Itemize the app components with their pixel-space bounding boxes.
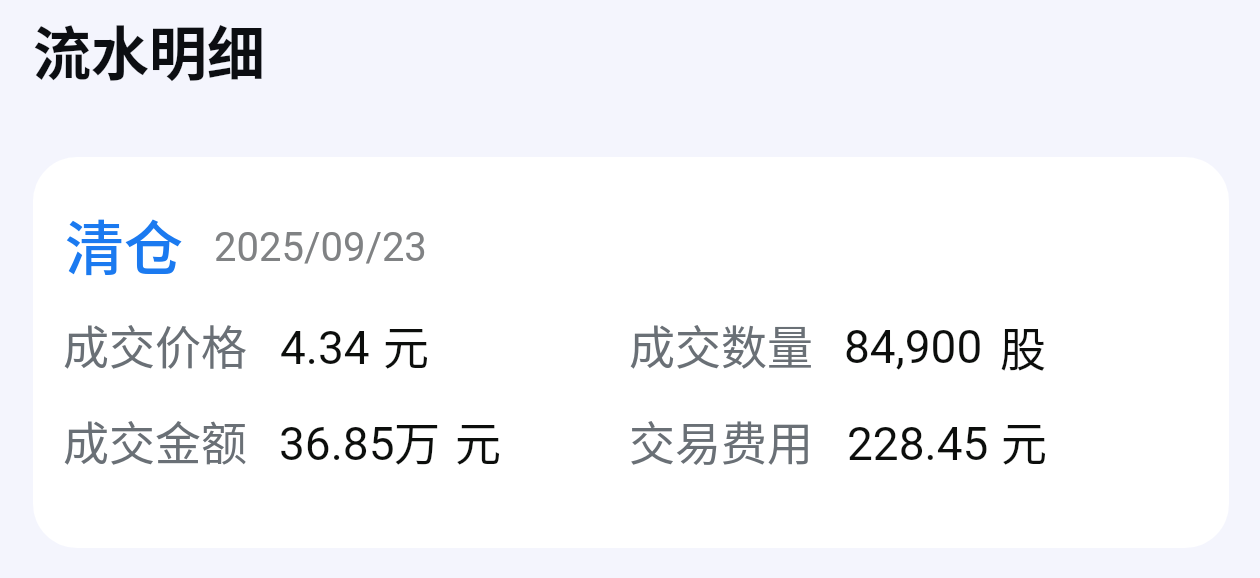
staticText: 成交数量 [629,311,813,378]
staticText: 成交金额 [63,407,247,474]
staticText: 清仓 [65,202,184,287]
button[interactable]: 清仓 [33,157,1229,548]
staticText: 228.45 [847,417,989,471]
staticText: 4.34 [280,321,370,375]
staticText: 元 [455,407,501,474]
staticText: 元 [383,311,429,378]
staticText: 流水明细 [33,8,266,92]
staticText: 84,900 [844,320,983,374]
staticText: 交易费用 [629,407,813,474]
staticText: 成交价格 [63,311,247,378]
staticText: 元 [1001,407,1047,474]
staticText: 2025/09/23 [214,224,427,271]
staticText: 36.85 [279,417,395,471]
staticText: 万 [394,407,440,474]
staticText: 股 [1000,313,1046,380]
